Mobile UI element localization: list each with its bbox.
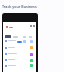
button[interactable] (3, 38, 36, 44)
button[interactable] (3, 51, 36, 57)
button[interactable] (3, 63, 36, 69)
button[interactable]: Track your Business (2, 4, 37, 9)
button[interactable] (3, 45, 36, 51)
staticText: Track your Business (2, 4, 37, 9)
button[interactable] (3, 57, 36, 63)
